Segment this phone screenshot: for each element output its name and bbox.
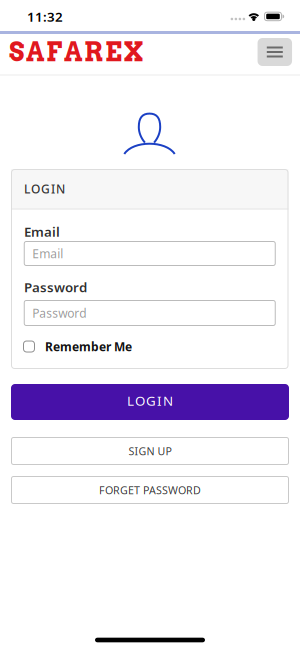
staticText: Password xyxy=(24,278,87,296)
staticText: L O G I N xyxy=(127,392,173,409)
button[interactable]: Password field xyxy=(24,300,276,326)
button[interactable]: L O G I N xyxy=(11,384,289,420)
button[interactable]: Menu xyxy=(258,38,292,66)
button[interactable]: Email field xyxy=(24,241,276,266)
staticText: Email xyxy=(24,223,60,240)
staticText: Password xyxy=(32,305,86,321)
staticText: Remember Me xyxy=(45,338,132,354)
staticText: S A F A R E X xyxy=(9,37,144,68)
staticText: SIGN UP xyxy=(128,444,171,458)
staticText: Email xyxy=(32,245,63,261)
staticText: 11:32 xyxy=(27,8,63,25)
button[interactable]: Remember Me xyxy=(11,340,288,352)
staticText: FORGET PASSWORD xyxy=(99,483,201,497)
staticText: L O G I N xyxy=(24,181,65,197)
button[interactable]: SIGN UP xyxy=(11,437,289,465)
button[interactable]: FORGET PASSWORD xyxy=(11,476,289,504)
